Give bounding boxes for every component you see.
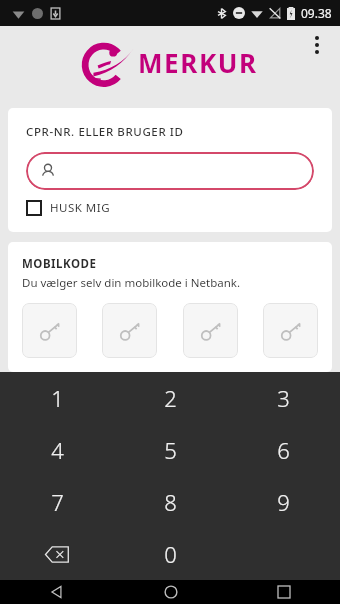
staticText: 4 bbox=[51, 435, 64, 465]
button[interactable]: 8 bbox=[114, 476, 227, 528]
button[interactable]: 6 bbox=[227, 424, 340, 476]
button[interactable]: 7 bbox=[0, 476, 114, 528]
staticText: 3 bbox=[277, 383, 290, 413]
button[interactable]: Code digit 4 bbox=[263, 303, 318, 358]
button[interactable]: Backspace bbox=[0, 528, 114, 580]
button[interactable]: Recent apps bbox=[227, 580, 340, 604]
staticText: 9 bbox=[277, 487, 290, 517]
button[interactable]: Code digit 1 bbox=[22, 303, 77, 358]
button[interactable]: 9 bbox=[227, 476, 340, 528]
button[interactable]: Code digit 3 bbox=[183, 303, 238, 358]
button[interactable]: 2 bbox=[114, 372, 227, 424]
staticText: HUSK MIG bbox=[50, 200, 111, 216]
staticText: Du vælger selv din mobilkode i Netbank. bbox=[22, 275, 241, 291]
staticText: MERKUR bbox=[138, 45, 258, 80]
staticText: 8 bbox=[164, 487, 177, 517]
staticText: 5 bbox=[164, 435, 177, 465]
button[interactable]: Home bbox=[114, 580, 227, 604]
button[interactable]: 1 bbox=[0, 372, 114, 424]
staticText: CPR-NR. ELLER BRUGER ID bbox=[26, 124, 184, 140]
button[interactable]: 4 bbox=[0, 424, 114, 476]
staticText: 7 bbox=[51, 487, 64, 517]
button[interactable]: More options bbox=[300, 28, 334, 62]
staticText: 6 bbox=[277, 435, 290, 465]
button[interactable]: Code digit 2 bbox=[102, 303, 157, 358]
button[interactable]: HUSK MIG bbox=[26, 200, 111, 216]
button[interactable]: 3 bbox=[227, 372, 340, 424]
staticText: 0 bbox=[164, 539, 177, 569]
button[interactable]: 5 bbox=[114, 424, 227, 476]
button[interactable]: CPR number or user ID field bbox=[26, 152, 314, 190]
button[interactable]: Back bbox=[0, 580, 114, 604]
button[interactable]: 0 bbox=[114, 528, 227, 580]
staticText: 2 bbox=[164, 383, 177, 413]
staticText: 1 bbox=[51, 383, 64, 413]
staticText: MOBILKODE bbox=[22, 256, 97, 272]
staticText: 09.38 bbox=[301, 5, 332, 21]
